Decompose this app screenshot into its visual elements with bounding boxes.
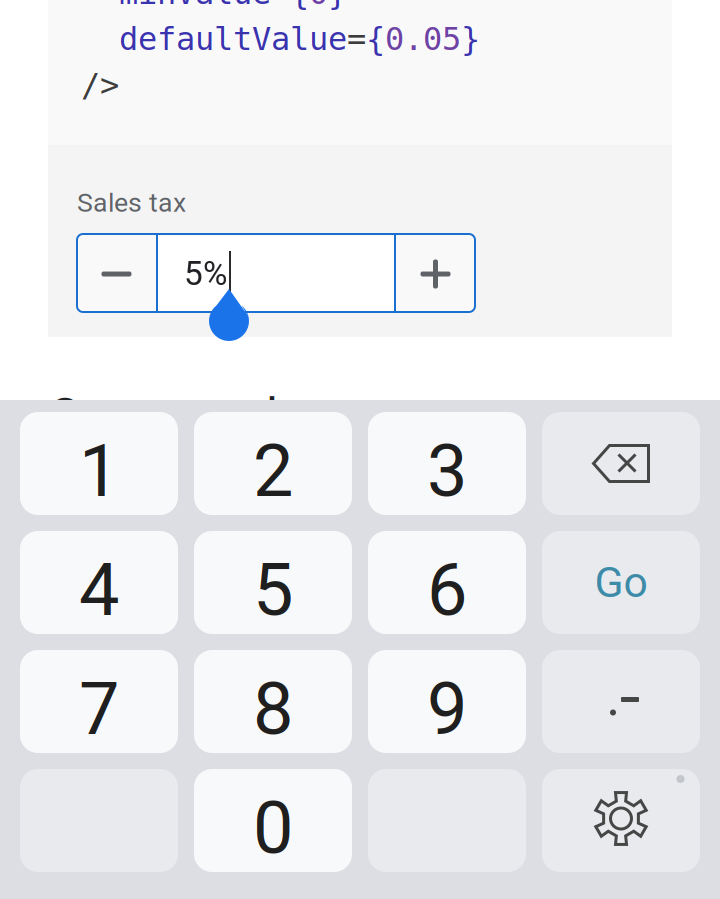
staticText: 8 <box>253 667 293 752</box>
staticText: Sales tax <box>77 187 186 218</box>
button[interactable]: 1 <box>20 412 178 515</box>
button[interactable]: Increase <box>396 234 475 312</box>
button[interactable]: Backspace <box>542 412 700 515</box>
staticText: Go <box>594 557 647 607</box>
button[interactable]: 5 <box>194 531 352 634</box>
staticText: 4 <box>79 548 119 633</box>
staticText: 6 <box>427 548 467 633</box>
staticText: 1 <box>79 429 119 514</box>
staticText: 2 <box>253 429 293 514</box>
button[interactable]: 9 <box>368 650 526 753</box>
button[interactable]: 7 <box>20 650 178 753</box>
staticText: } <box>328 0 347 12</box>
button[interactable]: Go <box>542 531 700 634</box>
staticText: = <box>347 20 366 58</box>
staticText: } <box>461 20 480 58</box>
staticText: /> <box>81 66 119 104</box>
button[interactable]: 0 <box>194 769 352 872</box>
button[interactable]: Decrease <box>77 234 156 312</box>
staticText: { <box>290 0 309 12</box>
staticText: 5% <box>184 254 227 293</box>
staticText: defaultValue <box>81 20 347 58</box>
staticText: 0.05 <box>385 20 461 58</box>
staticText: Course values <box>48 388 356 446</box>
button[interactable]: 4 <box>20 531 178 634</box>
button[interactable]: 3 <box>368 412 526 515</box>
staticText: minValue= <box>81 0 290 12</box>
button[interactable]: 6 <box>368 531 526 634</box>
staticText: 7 <box>79 667 119 752</box>
staticText: 3 <box>427 429 467 514</box>
staticText: 9 <box>427 667 467 752</box>
button[interactable]: Settings <box>542 769 700 872</box>
staticText: 0 <box>253 786 293 871</box>
staticText: 0 <box>309 0 328 12</box>
button[interactable]: 8 <box>194 650 352 753</box>
button[interactable]: 2 <box>194 412 352 515</box>
button[interactable]: Period and dash <box>542 650 700 753</box>
staticText: { <box>366 20 385 58</box>
staticText: 5 <box>253 548 293 633</box>
